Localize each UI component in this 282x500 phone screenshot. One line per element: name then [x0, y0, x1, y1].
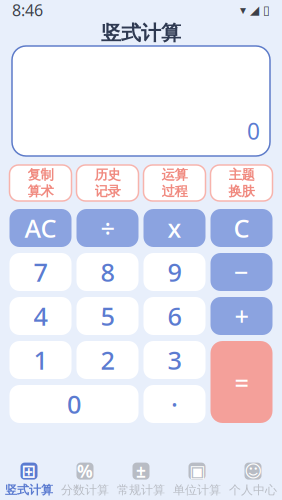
staticText: ☺ [244, 461, 262, 481]
staticText: 1 [33, 343, 47, 377]
button[interactable]: 8 [76, 253, 138, 291]
button[interactable]: 6 [143, 297, 205, 335]
button[interactable]: · [143, 385, 205, 423]
button[interactable]: 3 [143, 341, 205, 379]
staticText: 2 [100, 343, 114, 377]
staticText: ÷ [100, 211, 114, 245]
staticText: ▣ [189, 461, 205, 481]
button[interactable]: AC [9, 209, 71, 247]
button[interactable]: 主题 [210, 165, 272, 201]
staticText: 0 [247, 116, 260, 146]
staticText: 3 [167, 343, 181, 377]
staticText: 8 [100, 255, 114, 289]
staticText: + [234, 299, 248, 333]
button[interactable]: 9 [143, 253, 205, 291]
staticText: ⊞ [21, 461, 36, 481]
staticText: 记录 [94, 183, 120, 199]
staticText: 竖式计算 [5, 483, 53, 497]
button[interactable]: = [210, 341, 272, 423]
staticText: 8:46 [12, 0, 43, 21]
button[interactable]: ▣ [169, 463, 225, 497]
button[interactable]: + [210, 297, 272, 335]
button[interactable]: 0 [9, 385, 138, 423]
staticText: 单位计算 [173, 483, 221, 497]
button[interactable]: 1 [9, 341, 71, 379]
button[interactable]: 5 [76, 297, 138, 335]
button[interactable]: ÷ [76, 209, 138, 247]
staticText: 复制 [27, 167, 53, 183]
staticText: % [77, 460, 93, 483]
staticText: 算术 [27, 183, 53, 199]
staticText: 7 [33, 255, 47, 289]
button[interactable]: 运算 [143, 165, 205, 201]
staticText: 常规计算 [117, 483, 165, 497]
staticText: · [171, 387, 178, 421]
button[interactable]: − [210, 253, 272, 291]
staticText: 历史 [94, 167, 120, 183]
staticText: 0 [67, 387, 81, 421]
staticText: 换肤 [228, 183, 254, 199]
button[interactable]: 历史 [76, 165, 138, 201]
staticText: − [234, 255, 249, 289]
button[interactable]: 复制 [9, 165, 71, 201]
staticText: 4 [33, 299, 47, 333]
staticText: 6 [167, 299, 181, 333]
staticText: ± [136, 460, 146, 483]
staticText: = [234, 365, 248, 399]
button[interactable]: x [143, 209, 205, 247]
staticText: 运算 [161, 167, 187, 183]
button[interactable]: ⊞ [1, 463, 57, 497]
button[interactable]: 4 [9, 297, 71, 335]
staticText: 9 [167, 255, 181, 289]
button[interactable]: ☺ [225, 463, 281, 497]
staticText: 个人中心 [229, 483, 277, 497]
staticText: 分数计算 [61, 483, 109, 497]
staticText: x [167, 211, 181, 245]
button[interactable]: C [210, 209, 272, 247]
staticText: 过程 [161, 183, 187, 199]
staticText: ▾ ◢ ▯ [240, 3, 270, 17]
button[interactable]: ± [113, 463, 169, 497]
button[interactable]: 7 [9, 253, 71, 291]
staticText: AC [24, 211, 56, 245]
staticText: 主题 [228, 167, 254, 183]
staticText: C [233, 211, 249, 245]
button[interactable]: % [57, 463, 113, 497]
staticText: 5 [100, 299, 114, 333]
staticText: 竖式计算 [101, 21, 181, 45]
button[interactable]: 2 [76, 341, 138, 379]
